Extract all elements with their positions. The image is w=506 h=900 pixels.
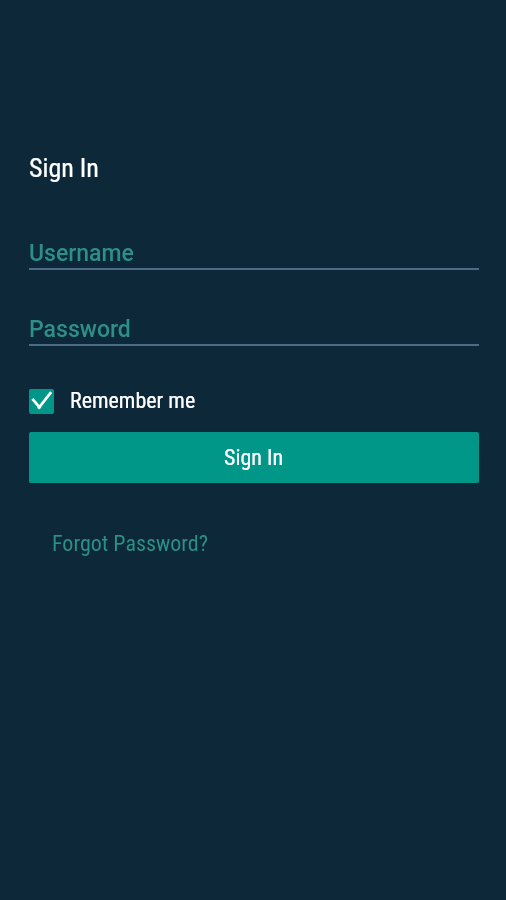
staticText: Sign In (224, 445, 284, 471)
staticText: Remember me (70, 388, 196, 414)
staticText: Username (29, 240, 134, 267)
button[interactable]: Username (29, 224, 479, 276)
other: Remember me, checked (29, 389, 54, 414)
button[interactable]: Remember me, checked (29, 388, 196, 414)
button[interactable]: Sign In (29, 432, 479, 483)
staticText: Forgot Password? (52, 531, 209, 557)
button[interactable]: Password (29, 300, 479, 352)
staticText: Password (29, 316, 131, 343)
button[interactable]: Forgot Password? (52, 531, 209, 557)
staticText: Sign In (29, 153, 99, 183)
